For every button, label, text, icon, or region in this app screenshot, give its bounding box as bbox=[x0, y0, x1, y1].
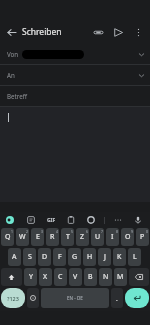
staticText: . bbox=[116, 294, 118, 303]
button[interactable]: Y bbox=[24, 268, 37, 286]
staticText: 5 bbox=[71, 229, 73, 234]
staticText: An bbox=[7, 71, 15, 79]
staticText: P bbox=[140, 232, 145, 242]
staticText: Betreff bbox=[7, 92, 27, 100]
button[interactable]: K bbox=[113, 248, 126, 266]
staticText: J bbox=[104, 252, 106, 262]
staticText: H bbox=[87, 252, 93, 262]
button[interactable]: Betreff bbox=[0, 86, 150, 106]
button[interactable]: Löschen bbox=[129, 268, 149, 286]
button[interactable]: Z bbox=[76, 228, 89, 246]
staticText: 4 bbox=[56, 229, 58, 234]
staticText: K bbox=[117, 252, 122, 262]
button[interactable]: Gboard bbox=[3, 213, 17, 227]
staticText: E bbox=[36, 232, 40, 242]
button[interactable]: Mehr bbox=[111, 213, 125, 227]
button[interactable]: Q bbox=[1, 228, 14, 246]
staticText: R bbox=[50, 232, 55, 242]
staticText: C bbox=[58, 272, 63, 282]
button[interactable]: H bbox=[83, 248, 96, 266]
button[interactable]: P bbox=[136, 228, 149, 246]
button[interactable]: R bbox=[46, 228, 59, 246]
staticText: I bbox=[111, 232, 114, 242]
staticText: 0 bbox=[146, 229, 148, 234]
staticText: 8 bbox=[116, 229, 118, 234]
button[interactable]: Anhang bbox=[88, 22, 108, 42]
staticText: D bbox=[42, 252, 48, 262]
staticText: EN - DE bbox=[67, 295, 83, 301]
staticText: T bbox=[66, 232, 70, 242]
staticText: M bbox=[117, 272, 124, 282]
staticText: O bbox=[125, 232, 131, 242]
staticText: V bbox=[73, 272, 78, 282]
staticText: N bbox=[103, 272, 109, 282]
staticText: G bbox=[72, 252, 78, 262]
staticText: 9 bbox=[131, 229, 133, 234]
staticText: U bbox=[95, 232, 101, 242]
button[interactable]: ?123 bbox=[1, 288, 25, 308]
button[interactable]: Von bbox=[0, 44, 150, 64]
button[interactable]: An bbox=[0, 65, 150, 85]
staticText: ?123 bbox=[7, 295, 19, 302]
button[interactable]: J bbox=[98, 248, 111, 266]
button[interactable]: Umschalt bbox=[1, 268, 22, 286]
button[interactable]: T bbox=[61, 228, 74, 246]
button[interactable]: Einstellungen bbox=[84, 213, 98, 227]
button[interactable]: Zurück bbox=[0, 21, 22, 43]
staticText: GIF bbox=[47, 217, 56, 224]
button[interactable]: M bbox=[114, 268, 127, 286]
staticText: L bbox=[133, 252, 137, 262]
button[interactable]: V bbox=[69, 268, 82, 286]
staticText: 2 bbox=[26, 229, 28, 234]
button[interactable]: C bbox=[54, 268, 67, 286]
button[interactable]: GIF bbox=[44, 213, 58, 227]
staticText: 1 bbox=[11, 229, 13, 234]
button[interactable]: F bbox=[53, 248, 66, 266]
button[interactable]: G bbox=[68, 248, 81, 266]
button[interactable]: S bbox=[23, 248, 36, 266]
button[interactable]: N bbox=[99, 268, 112, 286]
staticText: 3 bbox=[41, 229, 43, 234]
staticText: 7 bbox=[101, 229, 103, 234]
button[interactable]: O bbox=[121, 228, 134, 246]
button[interactable]: Senden bbox=[108, 22, 128, 42]
button[interactable]: U bbox=[91, 228, 104, 246]
button[interactable]: A bbox=[8, 248, 21, 266]
button[interactable]: B bbox=[84, 268, 97, 286]
staticText: B bbox=[88, 272, 93, 282]
button[interactable]: X bbox=[39, 268, 52, 286]
button[interactable] bbox=[0, 107, 150, 202]
staticText: W bbox=[19, 232, 26, 242]
staticText: S bbox=[28, 252, 32, 262]
button[interactable]: Leertaste bbox=[41, 288, 109, 308]
button[interactable]: Weitere Optionen bbox=[128, 22, 148, 42]
staticText: Y bbox=[29, 272, 33, 282]
staticText: F bbox=[58, 252, 62, 262]
button[interactable]: D bbox=[38, 248, 51, 266]
button[interactable]: Emoji bbox=[27, 288, 39, 308]
staticText: Von bbox=[7, 50, 19, 58]
staticText: Q bbox=[5, 232, 11, 242]
button[interactable]: Sticker bbox=[24, 213, 38, 227]
staticText: X bbox=[43, 272, 48, 282]
button[interactable]: L bbox=[128, 248, 141, 266]
staticText: Schreiben bbox=[22, 26, 62, 38]
staticText: Z bbox=[80, 232, 85, 242]
button[interactable]: E bbox=[31, 228, 44, 246]
staticText: A bbox=[12, 252, 17, 262]
button[interactable]: Sprache bbox=[131, 213, 145, 227]
button[interactable]: Zwischenablage bbox=[64, 213, 78, 227]
button[interactable]: Eingabe bbox=[125, 288, 149, 308]
button[interactable]: W bbox=[16, 228, 29, 246]
button[interactable]: I bbox=[106, 228, 119, 246]
staticText: 6 bbox=[86, 229, 88, 234]
button[interactable]: . bbox=[111, 288, 123, 308]
